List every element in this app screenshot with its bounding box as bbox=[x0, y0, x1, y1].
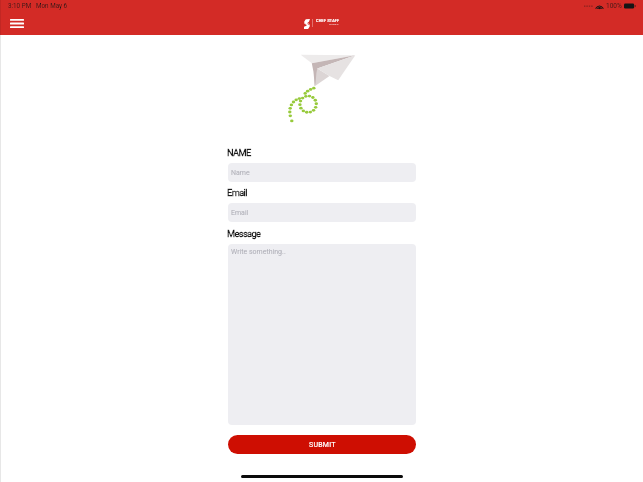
staticText: MOBILE bbox=[329, 23, 339, 26]
button[interactable]: SUBMIT bbox=[228, 435, 416, 454]
staticText: Write something.. bbox=[231, 248, 286, 256]
staticText: Email bbox=[231, 209, 249, 217]
staticText: Mon May 6 bbox=[36, 2, 68, 9]
staticText: Message bbox=[227, 228, 261, 239]
staticText: CHEF STAFF bbox=[316, 19, 340, 23]
staticText: NAME bbox=[227, 147, 251, 158]
button[interactable]: Email bbox=[228, 203, 416, 222]
staticText: 3:10 PM bbox=[8, 2, 32, 9]
button[interactable]: Name bbox=[228, 163, 416, 182]
staticText: Email bbox=[227, 187, 247, 198]
staticText: 100% bbox=[606, 2, 622, 10]
button[interactable]: Open navigation menu bbox=[2, 14, 31, 34]
staticText: Name bbox=[231, 169, 250, 177]
staticText: SUBMIT bbox=[309, 441, 336, 449]
